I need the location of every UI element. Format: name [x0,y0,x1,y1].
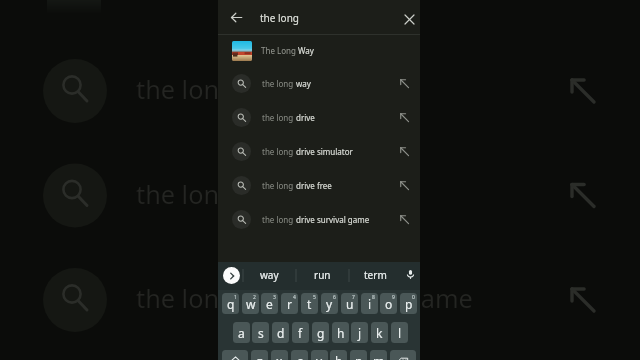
button[interactable]: o [380,293,397,314]
staticText: 5 [313,294,316,301]
staticText: The Long [261,45,298,56]
button[interactable]: The Long [218,35,420,66]
button[interactable]: n [350,350,367,360]
button[interactable]: g [312,322,329,343]
button[interactable]: j [351,322,368,343]
button[interactable]: m [370,350,387,360]
staticText: e [266,296,273,312]
button[interactable]: s [252,322,269,343]
staticText: 9 [392,294,395,301]
staticText: f [298,325,303,341]
button[interactable]: Shift [222,350,248,360]
staticText: l [398,325,402,341]
button[interactable]: the long [218,202,420,236]
staticText: run [314,268,331,282]
button[interactable]: l [391,322,408,343]
staticText: s [258,325,264,341]
staticText: the long drive [136,177,301,211]
staticText: i [368,296,372,312]
button[interactable]: z [251,350,268,360]
button[interactable]: Insert suggestion [394,175,414,195]
staticText: x [276,353,283,360]
button[interactable]: v [311,350,328,360]
staticText: g [317,325,325,341]
button[interactable]: Backspace [390,350,416,360]
button[interactable]: p [400,293,417,314]
button[interactable]: c [291,350,308,360]
button[interactable]: u [341,293,358,314]
button[interactable]: Insert suggestion [394,209,414,229]
staticText: the long [262,180,296,191]
staticText: the long [262,146,296,157]
button[interactable]: term [349,262,401,288]
staticText: 0 [412,294,415,301]
staticText: n [355,353,363,360]
button[interactable]: the long [218,134,420,168]
staticText: a [238,325,245,341]
staticText: k [376,325,383,341]
staticText: o [385,296,393,312]
button[interactable]: i [361,293,378,314]
staticText: 4 [293,294,296,301]
staticText: 3 [273,294,276,301]
staticText: w [246,296,256,312]
button[interactable]: a [233,322,250,343]
staticText: 7 [352,294,355,301]
button[interactable]: r [281,293,298,314]
staticText: term [364,268,387,282]
button[interactable]: Insert suggestion [394,73,414,93]
staticText: c [297,353,303,360]
staticText: the long [262,214,296,225]
staticText: u [346,296,354,312]
staticText: way [260,268,279,282]
button[interactable]: More suggestions [223,267,240,284]
staticText: the long way [136,72,289,106]
button[interactable]: b [330,350,347,360]
staticText: b [335,353,343,360]
button[interactable]: h [332,322,349,343]
staticText: drive [296,112,315,123]
button[interactable]: Voice input [403,267,418,282]
button[interactable]: Clear query [397,7,421,31]
button[interactable]: t [301,293,318,314]
button[interactable]: way [243,262,296,288]
staticText: drive survival game [296,214,370,225]
button[interactable]: x [271,350,288,360]
button[interactable]: Insert suggestion [394,107,414,127]
button[interactable]: the long [218,168,420,202]
staticText: r [287,296,292,312]
staticText: 2 [253,294,256,301]
staticText: the long drive survival game [136,281,473,315]
staticText: way [296,78,311,89]
staticText: t [307,296,312,312]
staticText: 6 [333,294,336,301]
button[interactable]: w [242,293,259,314]
button[interactable]: d [272,322,289,343]
staticText: y [326,296,333,312]
button[interactable]: e [261,293,278,314]
staticText: j [358,325,362,341]
staticText: Way [298,45,314,56]
staticText: h [337,325,345,341]
staticText: 1 [234,294,237,301]
staticText: the long [260,11,299,25]
button[interactable]: run [296,262,349,288]
staticText: p [405,296,413,312]
staticText: v [316,353,323,360]
staticText: d [277,325,285,341]
button[interactable]: q [222,293,239,314]
button[interactable]: the long [218,100,420,134]
staticText: drive free [296,180,332,191]
staticText: the long [262,112,296,123]
staticText: m [373,353,385,360]
button[interactable]: y [321,293,338,314]
staticText: the long [262,78,296,89]
button[interactable]: Back [224,5,248,29]
button[interactable]: Insert suggestion [394,141,414,161]
staticText: q [227,296,235,312]
staticText: z [257,353,263,360]
button[interactable]: f [292,322,309,343]
button[interactable]: k [371,322,388,343]
button[interactable]: the long [218,66,420,100]
staticText: 8 [372,294,375,301]
